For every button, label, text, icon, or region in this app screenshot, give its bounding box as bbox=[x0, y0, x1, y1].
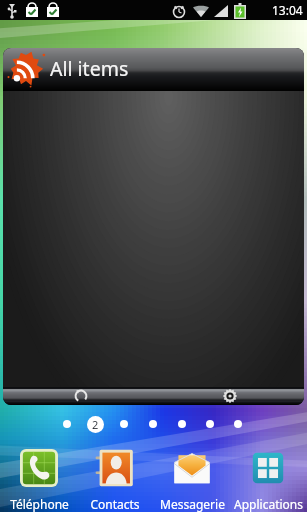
button[interactable]: Refresh bbox=[72, 387, 90, 405]
staticText: 2 bbox=[92, 417, 99, 432]
staticText: Téléphone bbox=[10, 496, 69, 512]
button[interactable] bbox=[206, 420, 214, 428]
staticText: 13:04 bbox=[272, 2, 303, 18]
button[interactable] bbox=[178, 420, 186, 428]
button[interactable] bbox=[149, 420, 157, 428]
button[interactable]: Settings bbox=[221, 387, 239, 405]
button[interactable] bbox=[63, 420, 71, 428]
button[interactable]: Téléphone bbox=[1, 445, 77, 512]
staticText: Messagerie bbox=[160, 496, 225, 512]
button[interactable]: All items bbox=[3, 48, 304, 91]
staticText: All items bbox=[50, 55, 129, 82]
button[interactable] bbox=[120, 420, 128, 428]
staticText: Applications bbox=[234, 496, 303, 512]
staticText: Contacts bbox=[90, 496, 140, 512]
button[interactable]: 2 bbox=[87, 416, 104, 433]
button[interactable] bbox=[234, 420, 242, 428]
button[interactable]: Applications bbox=[230, 445, 306, 512]
button[interactable]: Messagerie bbox=[154, 445, 230, 512]
button[interactable]: Contacts bbox=[77, 445, 153, 512]
